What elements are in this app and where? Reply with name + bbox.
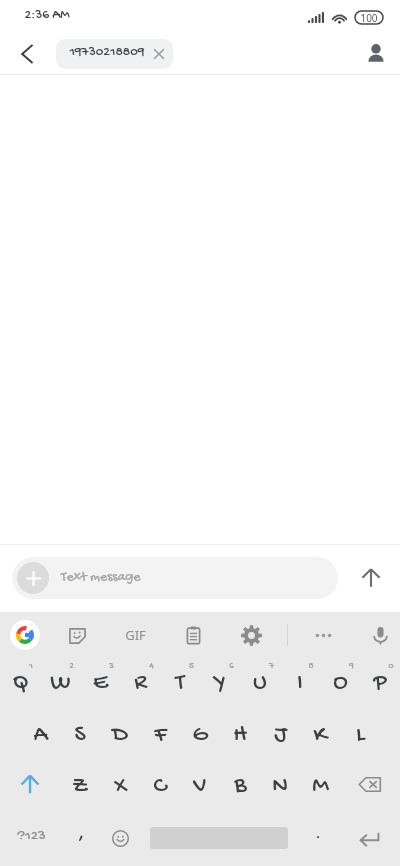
button[interactable]: Clipboard [171,613,215,657]
button[interactable]: K [300,707,340,758]
staticText: J [274,721,287,749]
button[interactable]: U [240,657,280,707]
staticText: . [315,823,321,845]
button[interactable]: Settings [229,613,273,657]
button[interactable]: P [360,657,400,707]
button[interactable]: GIF [113,613,157,657]
staticText: D [112,721,128,749]
staticText: L [356,721,365,749]
button[interactable]: More options [301,613,345,657]
button[interactable]: Enter [338,810,400,866]
staticText: V [193,772,207,800]
button[interactable]: Text message [12,557,338,599]
button[interactable]: C [140,758,180,810]
staticText: C [153,772,167,800]
button[interactable]: V [180,758,220,810]
staticText: , [78,823,84,845]
button[interactable]: Back [3,32,51,75]
button[interactable]: N [260,758,300,810]
button[interactable]: J [260,707,300,758]
button[interactable]: Google search [3,613,47,657]
button[interactable]: Backspace [340,758,400,810]
button[interactable]: Q [0,657,40,707]
button[interactable]: ?123 [0,810,62,866]
staticText: Q [12,669,29,697]
staticText: 4 [149,661,154,672]
button[interactable]: W [40,657,80,707]
button[interactable]: Z [60,758,100,810]
staticText: T [175,669,185,697]
staticText: 6 [229,661,234,672]
button[interactable]: R [120,657,160,707]
button[interactable]: F [140,707,180,758]
staticText: X [114,772,127,800]
button[interactable]: Send [346,550,396,606]
staticText: U [253,669,267,697]
staticText: 8 [308,661,314,672]
button[interactable]: I [280,657,320,707]
button[interactable]: O [320,657,360,707]
staticText: 3 [109,661,114,672]
staticText: 7 [269,661,274,672]
button[interactable]: Shift [0,758,60,810]
staticText: P [373,669,387,697]
staticText: A [33,721,48,749]
button[interactable]: G [180,707,220,758]
button[interactable]: Contact details [352,32,400,75]
button[interactable]: M [300,758,340,810]
staticText: 0 [388,661,394,672]
button[interactable]: Emoji [100,810,141,866]
staticText: W [50,669,71,697]
staticText: 100 [360,11,378,24]
button[interactable]: B [220,758,260,810]
staticText: O [333,669,348,697]
staticText: GIF [125,626,146,644]
button[interactable]: S [60,707,100,758]
staticText: 19730218809 [69,45,145,61]
staticText: R [134,669,147,697]
staticText: F [154,721,167,749]
staticText: E [93,669,108,697]
staticText: Text message [61,569,141,586]
button[interactable]: Voice input [358,613,400,657]
button[interactable]: E [80,657,120,707]
staticText: S [74,721,86,749]
staticText: B [234,772,247,800]
staticText: ?123 [17,827,46,845]
staticText: 1 [29,661,33,672]
button[interactable]: T [160,657,200,707]
staticText: 2:36 AM [24,8,70,24]
button[interactable]: D [100,707,140,758]
staticText: M [312,772,329,800]
staticText: G [192,721,208,749]
button[interactable]: Stickers [55,613,99,657]
button[interactable]: . [297,810,339,866]
staticText: 9 [349,661,354,672]
staticText: 2 [69,661,74,672]
staticText: K [313,721,327,749]
button[interactable]: , [62,810,100,866]
button[interactable]: 19730218809 [56,39,173,69]
staticText: Y [214,669,226,697]
staticText: I [297,669,303,697]
button[interactable]: L [340,707,380,758]
staticText: H [233,721,247,749]
staticText: 5 [189,661,194,672]
staticText: N [272,772,288,800]
button[interactable]: X [100,758,140,810]
button[interactable]: A [20,707,60,758]
button[interactable]: H [220,707,260,758]
button[interactable]: Y [200,657,240,707]
staticText: Z [72,772,88,800]
